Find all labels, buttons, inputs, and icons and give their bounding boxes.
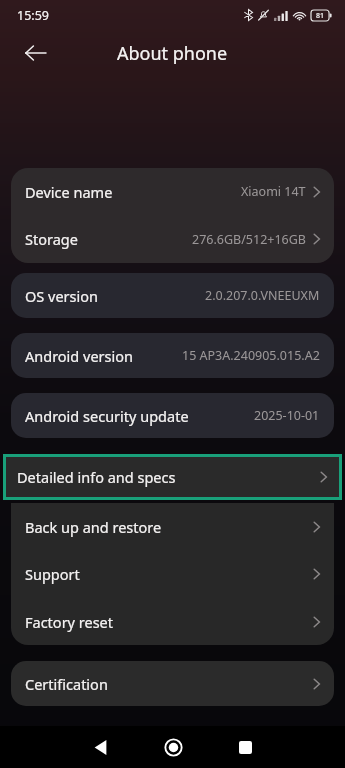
button[interactable]: Android version xyxy=(11,333,334,378)
staticText: Device name xyxy=(25,182,113,202)
button[interactable]: Detailed info and specs xyxy=(6,457,339,497)
staticText: 276.6GB/512+16GB xyxy=(192,231,306,248)
button[interactable]: Home xyxy=(153,727,193,767)
staticText: Back up and restore xyxy=(25,517,162,537)
staticText: Factory reset xyxy=(25,612,114,632)
staticText: Xiaomi 14T xyxy=(241,183,306,200)
staticText: Support xyxy=(25,564,80,584)
staticText: Android security update xyxy=(25,406,189,426)
staticText: 15:59 xyxy=(17,7,49,24)
button[interactable]: Factory reset xyxy=(11,598,334,645)
staticText: 81 xyxy=(313,11,327,21)
button[interactable]: Back xyxy=(14,32,56,74)
button[interactable]: Android security update xyxy=(11,393,334,438)
button[interactable]: Device name xyxy=(11,168,334,215)
staticText: OS version xyxy=(25,286,99,306)
button[interactable]: Storage xyxy=(11,215,334,263)
staticText: 15 AP3A.240905.015.A2 xyxy=(182,347,320,364)
button[interactable]: Recents xyxy=(225,727,265,767)
staticText: Storage xyxy=(25,229,78,249)
button[interactable]: Back xyxy=(80,727,120,767)
staticText: About phone xyxy=(117,41,228,66)
staticText: Android version xyxy=(25,346,133,366)
button[interactable]: Back up and restore xyxy=(11,503,334,550)
staticText: 2025-10-01 xyxy=(254,407,320,424)
button[interactable]: Support xyxy=(11,550,334,598)
button[interactable]: Certification xyxy=(11,661,334,706)
staticText: Certification xyxy=(25,674,108,694)
staticText: 2.0.207.0.VNEEUXM xyxy=(205,287,320,304)
staticText: Detailed info and specs xyxy=(17,467,176,487)
button[interactable]: OS version xyxy=(11,273,334,318)
